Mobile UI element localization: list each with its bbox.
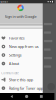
staticText: Share this app — [9, 77, 33, 82]
button[interactable]: Settings — [0, 51, 43, 59]
button[interactable]: About — [0, 59, 43, 68]
staticText: Settings — [9, 52, 22, 58]
staticText: Favorites — [9, 35, 25, 41]
staticText: Sign in with Google — [5, 14, 37, 19]
button[interactable]: Rating for Toner app — [0, 84, 43, 92]
staticText: Communicate — [1, 71, 19, 75]
staticText: Toner — [0, 0, 8, 3]
staticText: About — [9, 61, 19, 66]
staticText: New app from us — [9, 44, 39, 49]
button[interactable]: Favorites — [0, 34, 43, 42]
button[interactable]: New app from us — [0, 42, 43, 51]
button[interactable]: Share this app — [0, 75, 43, 84]
staticText: Rating for Toner app — [9, 85, 43, 91]
